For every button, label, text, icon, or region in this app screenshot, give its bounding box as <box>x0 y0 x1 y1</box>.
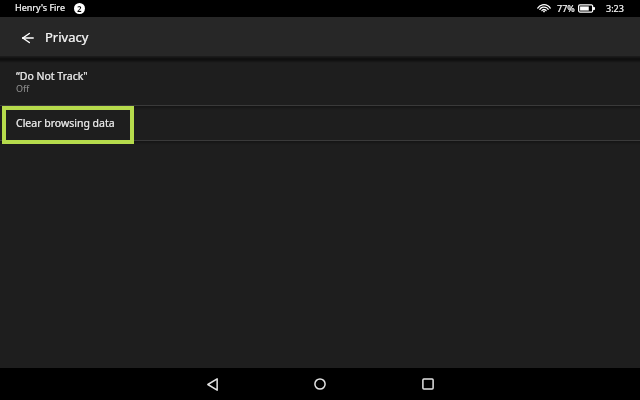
staticText: Henry's Fire <box>15 1 65 13</box>
button[interactable]: Home <box>304 368 336 400</box>
staticText: Privacy <box>45 28 89 46</box>
button[interactable]: Back <box>196 368 228 400</box>
button[interactable]: “Do Not Track" <box>0 56 640 105</box>
staticText: 2 <box>77 3 82 14</box>
staticText: Off <box>16 82 30 94</box>
staticText: 3:23 <box>606 2 624 14</box>
button[interactable]: Recent apps <box>412 368 444 400</box>
button[interactable]: Back <box>12 22 44 54</box>
staticText: Clear browsing data <box>16 116 115 130</box>
staticText: 77% <box>557 2 575 14</box>
button[interactable]: Clear browsing data <box>0 106 640 140</box>
staticText: “Do Not Track" <box>16 69 88 83</box>
